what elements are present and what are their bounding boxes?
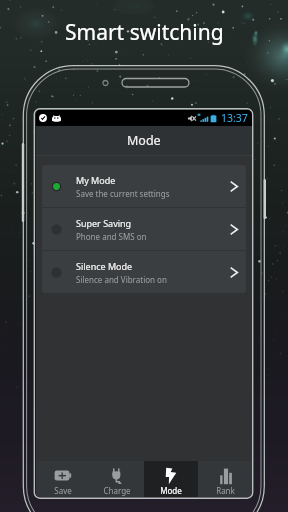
button[interactable]: My Mode — [42, 165, 246, 207]
staticText: Silence Mode — [76, 260, 133, 272]
staticText: Phone and SMS on — [76, 231, 147, 242]
staticText: Charge — [103, 485, 131, 496]
staticText: Smart switching — [65, 18, 224, 47]
button[interactable]: Rank — [198, 461, 252, 497]
staticText: Save — [54, 485, 72, 496]
button[interactable]: Save — [36, 461, 90, 497]
staticText: Mode — [160, 485, 182, 496]
button[interactable]: Mode — [144, 461, 198, 497]
button[interactable]: Super Saving — [42, 208, 246, 250]
staticText: Rank — [216, 485, 235, 496]
button[interactable]: Charge — [90, 461, 144, 497]
staticText: 13:37 — [221, 111, 248, 125]
staticText: Mode — [127, 132, 161, 149]
staticText: Save the current settings — [76, 188, 170, 199]
button[interactable]: Silence Mode — [42, 251, 246, 293]
staticText: Silence and Vibration on — [76, 274, 167, 285]
staticText: Super Saving — [76, 217, 132, 229]
staticText: My Mode — [76, 174, 116, 186]
